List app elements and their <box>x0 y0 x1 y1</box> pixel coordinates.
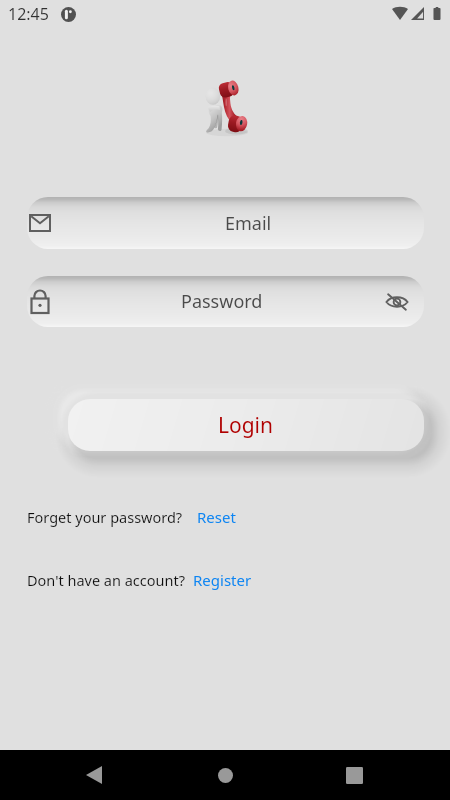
button[interactable]: Home <box>201 751 249 799</box>
staticText: Reset <box>197 507 236 527</box>
staticText: Forget your password? <box>27 507 183 527</box>
button[interactable]: Password <box>27 276 424 327</box>
staticText: Password <box>181 289 263 314</box>
staticText: Don't have an account? <box>27 570 185 590</box>
staticText: Email <box>225 211 272 236</box>
button[interactable]: Reset <box>197 507 236 527</box>
button[interactable]: Email <box>27 197 424 249</box>
button[interactable]: Login <box>68 399 424 451</box>
button[interactable]: Recent apps <box>330 751 378 799</box>
staticText: 12:45 <box>8 3 49 25</box>
button[interactable]: Register <box>193 570 252 590</box>
button[interactable]: Back <box>70 751 118 799</box>
staticText: Register <box>193 570 252 590</box>
button[interactable]: Toggle password visibility <box>385 290 409 314</box>
staticText: Login <box>218 411 274 440</box>
